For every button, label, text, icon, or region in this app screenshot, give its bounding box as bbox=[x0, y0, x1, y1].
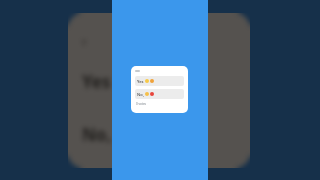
button[interactable]: No, bbox=[135, 89, 184, 99]
staticText: No, bbox=[137, 92, 144, 97]
button[interactable]: Yes bbox=[131, 66, 188, 113]
other: Story frame bbox=[112, 0, 208, 180]
staticText: Yes bbox=[137, 79, 144, 84]
staticText: Yes bbox=[82, 70, 111, 93]
staticText: 0 votes bbox=[136, 102, 147, 106]
button[interactable]: Yes bbox=[135, 76, 184, 86]
staticText: No, bbox=[82, 123, 112, 146]
